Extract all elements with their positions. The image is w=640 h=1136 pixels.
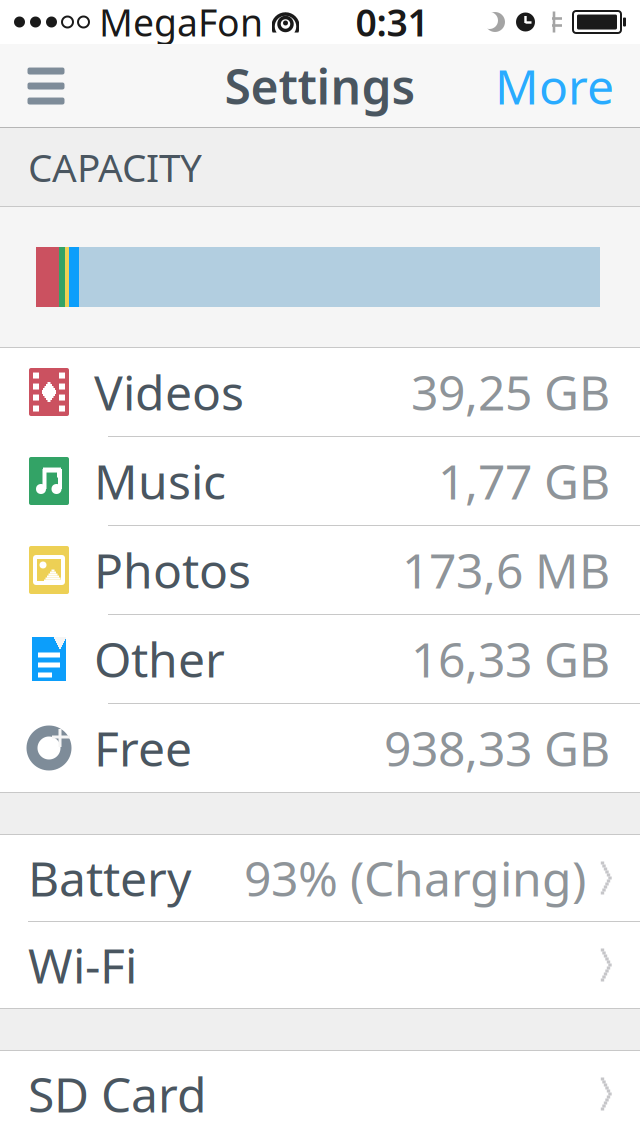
staticText: 93% (Charging): [244, 846, 586, 910]
staticText: Settings: [224, 54, 415, 118]
button[interactable]: Photos: [0, 526, 640, 614]
staticText: Other: [94, 627, 225, 691]
staticText: 1,77 GB: [438, 449, 610, 513]
staticText: 173,6 MB: [402, 538, 610, 602]
staticText: CAPACITY: [28, 141, 202, 193]
button[interactable]: Wi-Fi: [0, 922, 640, 1008]
staticText: More: [495, 54, 614, 118]
staticText: Wi-Fi: [28, 933, 137, 997]
button[interactable]: SD Card: [0, 1051, 640, 1136]
staticText: 0:31: [355, 0, 428, 47]
staticText: Photos: [94, 538, 251, 602]
staticText: 938,33 GB: [384, 716, 610, 780]
button[interactable]: Battery: [0, 835, 640, 921]
staticText: Free: [94, 716, 192, 780]
staticText: Battery: [28, 846, 191, 910]
staticText: 39,25 GB: [411, 360, 610, 424]
button[interactable]: More: [479, 46, 632, 126]
staticText: Videos: [94, 360, 244, 424]
staticText: MegaFon: [99, 0, 263, 47]
button[interactable]: Music: [0, 437, 640, 525]
staticText: 16,33 GB: [411, 627, 610, 691]
staticText: SD Card: [28, 1062, 207, 1126]
button[interactable]: Menu: [8, 46, 84, 126]
button[interactable]: Free: [0, 704, 640, 792]
button[interactable]: Videos: [0, 348, 640, 436]
button[interactable]: Other: [0, 615, 640, 703]
staticText: Music: [94, 449, 226, 513]
